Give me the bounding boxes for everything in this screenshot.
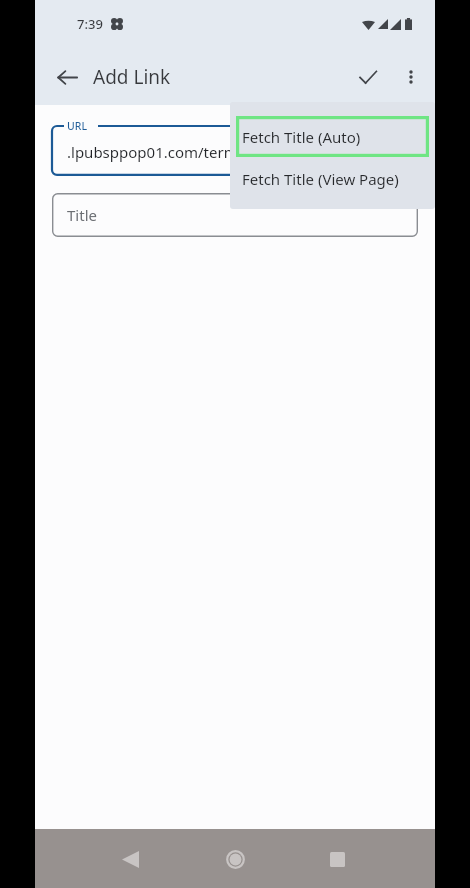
staticText: Add Link bbox=[93, 64, 171, 90]
staticText: Fetch Title (View Page) bbox=[242, 169, 399, 189]
button[interactable]: URL bbox=[52, 119, 418, 176]
staticText: Fetch Title (Auto) bbox=[242, 127, 361, 147]
button[interactable]: Fetch Title (Auto) bbox=[236, 116, 429, 157]
button[interactable]: Back bbox=[43, 53, 91, 101]
staticText: Title bbox=[67, 205, 97, 225]
staticText: .lpubsppop01.com/terms-of-service bbox=[67, 142, 318, 162]
staticText: URL bbox=[67, 119, 87, 133]
button[interactable]: Back bbox=[106, 835, 154, 883]
button[interactable]: More options bbox=[391, 57, 431, 97]
button[interactable]: Fetch Title (View Page) bbox=[230, 157, 435, 201]
button[interactable]: Save bbox=[345, 54, 391, 100]
button[interactable]: Title bbox=[52, 193, 418, 237]
staticText: 7:39 bbox=[77, 15, 103, 33]
button[interactable]: Recent apps bbox=[313, 835, 361, 883]
button[interactable]: Home bbox=[211, 835, 259, 883]
